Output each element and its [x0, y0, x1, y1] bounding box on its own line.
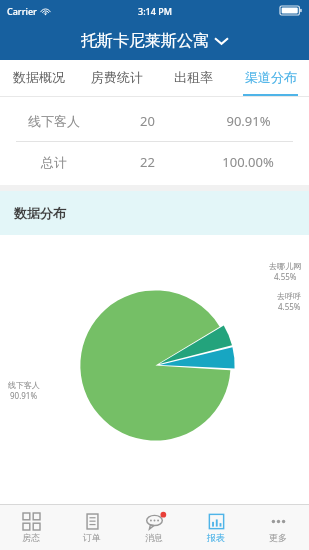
button[interactable]: 房态	[0, 505, 61, 550]
button[interactable]: 房费统计	[78, 60, 155, 96]
staticText: 20	[140, 112, 155, 130]
staticText: 去哪儿网	[269, 261, 301, 271]
staticText: 出租率	[174, 69, 213, 85]
button[interactable]: 订单	[61, 505, 123, 550]
button[interactable]: 渠道分布	[232, 60, 309, 96]
staticText: 订单	[83, 532, 101, 543]
staticText: 3:14 PM	[138, 5, 172, 17]
staticText: 房态	[22, 532, 40, 543]
staticText: Carrier	[7, 5, 37, 17]
staticText: 数据概况	[13, 69, 65, 85]
staticText: 100.00%	[222, 153, 274, 171]
staticText: 4.55%	[278, 301, 301, 312]
staticText: 更多	[269, 532, 287, 543]
staticText: 90.91%	[10, 390, 38, 401]
staticText: 去呼呼	[277, 291, 301, 301]
staticText: 4.55%	[274, 271, 297, 282]
staticText: 房费统计	[91, 69, 143, 85]
staticText: 渠道分布	[245, 69, 297, 85]
button[interactable]: 托斯卡尼莱斯公寓	[0, 21, 309, 60]
button[interactable]: 消息	[123, 505, 185, 550]
staticText: 90.91%	[226, 112, 271, 130]
button[interactable]: 出租率	[155, 60, 232, 96]
button[interactable]: 数据概况	[0, 60, 78, 96]
button[interactable]: 报表	[185, 505, 247, 550]
button[interactable]: 总计	[0, 142, 309, 182]
staticText: 数据分布	[14, 205, 66, 221]
staticText: 报表	[207, 532, 225, 543]
button[interactable]: 线下客人	[0, 101, 309, 141]
staticText: 线下客人	[28, 113, 80, 129]
staticText: 线下客人	[8, 380, 40, 390]
staticText: 消息	[145, 532, 163, 543]
staticText: 总计	[41, 154, 67, 170]
button[interactable]: 更多	[247, 505, 309, 550]
staticText: 托斯卡尼莱斯公寓	[81, 31, 209, 51]
staticText: 22	[140, 153, 155, 171]
